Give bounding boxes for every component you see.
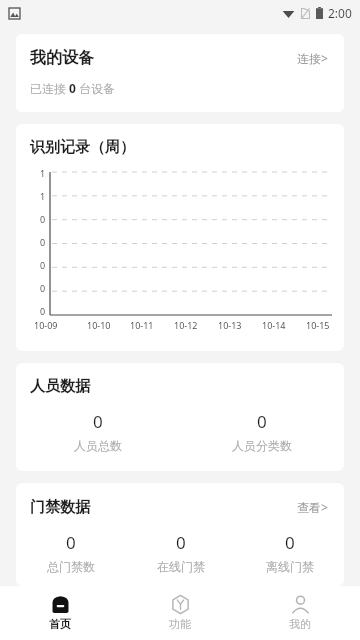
staticText: 离线门禁: [266, 559, 314, 574]
staticText: 0: [93, 410, 103, 433]
staticText: 1: [40, 190, 46, 200]
button[interactable]: 首页: [0, 586, 120, 640]
staticText: 0: [40, 305, 46, 315]
staticText: 我的: [289, 617, 311, 631]
staticText: 1: [40, 167, 46, 177]
staticText: 10-15: [306, 319, 330, 331]
staticText: 10-12: [174, 319, 198, 331]
staticText: 0: [176, 531, 186, 554]
staticText: 总门禁数: [47, 559, 95, 574]
staticText: 人员数据: [30, 377, 90, 396]
button[interactable]: 0: [16, 410, 180, 453]
staticText: 0: [285, 531, 295, 554]
staticText: 0: [40, 259, 46, 269]
staticText: 2:00: [328, 5, 352, 21]
staticText: 识别记录（周）: [30, 138, 135, 157]
other: 功能: [171, 595, 190, 614]
staticText: 10-11: [130, 319, 154, 331]
other: 我的: [291, 595, 310, 614]
staticText: 首页: [49, 617, 71, 631]
staticText: 在线门禁: [157, 559, 205, 574]
staticText: 0: [40, 282, 46, 292]
staticText: 0: [66, 531, 76, 554]
button[interactable]: 0: [235, 531, 344, 574]
staticText: 我的设备: [30, 48, 94, 68]
button[interactable]: 0: [126, 531, 235, 574]
button[interactable]: 我的: [240, 586, 360, 640]
staticText: 人员总数: [74, 438, 122, 453]
staticText: 门禁数据: [30, 498, 90, 517]
staticText: 连接>: [297, 50, 328, 66]
button[interactable]: 功能: [120, 586, 240, 640]
button[interactable]: 0: [16, 531, 126, 574]
staticText: 查看>: [297, 499, 328, 515]
staticText: 10-13: [218, 319, 242, 331]
staticText: 0: [40, 236, 46, 246]
staticText: 10-14: [262, 319, 286, 331]
staticText: 功能: [169, 617, 191, 631]
button[interactable]: 0: [180, 410, 344, 453]
staticText: 0: [257, 410, 267, 433]
staticText: 已连接 0 台设备: [30, 80, 116, 96]
staticText: 10-09: [34, 319, 58, 331]
other: 首页: [51, 595, 70, 614]
staticText: 10-10: [87, 319, 111, 331]
staticText: 0: [40, 213, 46, 223]
button[interactable]: 查看>: [295, 497, 330, 517]
button[interactable]: 连接>: [295, 48, 330, 68]
staticText: 人员分类数: [232, 438, 292, 453]
